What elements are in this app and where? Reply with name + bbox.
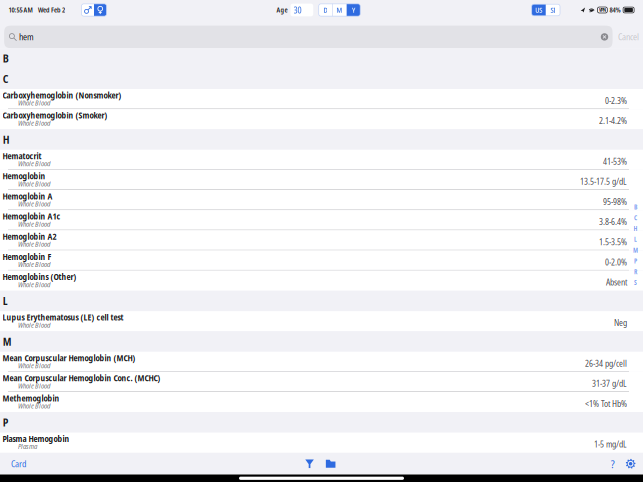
staticText: Wed Feb 2 [38,5,65,15]
staticText: Age [276,5,287,15]
button[interactable]: Hemoglobins (Other) [0,271,643,291]
button[interactable]: Methemoglobin [0,392,643,412]
button[interactable]: Mean Corpuscular Hemoglobin Conc. (MCHC) [0,372,643,392]
staticText: 3.8-6.4% [599,216,627,227]
button[interactable]: Hemoglobin A2 [0,230,643,250]
staticText: Whole Blood [18,158,50,168]
staticText: Hemoglobin A2 [3,231,57,242]
staticText: Absent [606,277,627,288]
staticText: SI [550,5,555,15]
button[interactable]: Hematocrit [0,150,643,170]
staticText: M [336,5,342,15]
staticText: 2.1-4.2% [599,115,627,126]
staticText: Whole Blood [18,98,50,108]
button[interactable]: Section index [629,48,642,453]
staticText: 1.5-3.5% [599,236,627,248]
button[interactable]: hem [4,26,613,48]
staticText: H [3,132,10,147]
staticText: <1% Tot Hb% [585,398,627,409]
staticText: 31-37 g/dL [592,378,627,389]
staticText: 41-53% [603,156,627,167]
button[interactable]: Card [0,453,37,474]
staticText: Methemoglobin [3,392,60,404]
staticText: Carboxyhemoglobin (Smoker) [3,110,108,121]
staticText: 84% [609,5,620,15]
button[interactable]: Units [532,4,560,16]
staticText: R [634,268,637,276]
staticText: Cancel [618,31,639,43]
staticText: S [634,278,637,287]
staticText: C [3,71,9,86]
staticText: P [634,257,637,265]
staticText: 30 [293,4,301,16]
button[interactable]: Help [604,453,622,474]
button[interactable]: Plasma Hemogobin [0,432,643,453]
staticText: Whole Blood [18,219,50,229]
staticText: Whole Blood [18,199,50,209]
staticText: Y [352,5,355,15]
staticText: M [633,246,638,254]
button[interactable]: Hemoglobin [0,170,643,190]
staticText: ? [611,456,615,471]
staticText: Neg [614,317,627,328]
staticText: H [633,224,637,233]
staticText: B [3,51,9,66]
staticText: Hemoglobin A [3,190,53,202]
button[interactable]: Age units [319,4,360,16]
button[interactable]: Carboxyhemoglobin (Smoker) [0,109,643,129]
staticText: 95-98% [603,196,627,207]
staticText: Hemoglobin A1c [3,211,61,222]
button[interactable]: Cancel [613,26,643,48]
staticText: P [3,415,9,430]
button[interactable]: Carboxyhemoglobin (Nonsmoker) [0,89,643,109]
staticText: 0-2.3% [605,95,627,106]
staticText: Carboxyhemoglobin (Nonsmoker) [3,89,122,101]
staticText: Plasma Hemogobin [3,433,70,444]
staticText: Hematocrit [3,150,42,162]
button[interactable]: Hemoglobin A [0,190,643,210]
staticText: Hemoglobin [3,170,46,182]
staticText: Mean Corpuscular Hemoglobin (MCH) [3,352,136,364]
staticText: Plasma [18,441,37,451]
button[interactable]: Sex [81,4,106,16]
staticText: 0-2.0% [605,256,627,268]
button[interactable]: Hemoglobin F [0,250,643,270]
staticText: Mean Corpuscular Hemoglobin Conc. (MCHC) [3,372,161,384]
button[interactable]: Lupus Erythematosus (LE) cell test [0,311,643,331]
staticText: Whole Blood [18,320,50,330]
staticText: VPN [599,7,606,13]
staticText: C [634,214,637,222]
staticText: 1-5 mg/dL [594,438,627,450]
staticText: Whole Blood [18,239,50,249]
button[interactable]: Folders [320,453,341,474]
staticText: Whole Blood [18,259,50,269]
staticText: Whole Blood [18,360,50,370]
staticText: Whole Blood [18,118,50,128]
staticText: US [535,5,542,15]
staticText: D [323,5,327,15]
staticText: B [634,203,637,211]
staticText: 10:55 AM [9,5,33,15]
button[interactable]: Settings [622,453,643,474]
button[interactable]: Mean Corpuscular Hemoglobin (MCH) [0,352,643,372]
staticText: Whole Blood [18,279,50,289]
button[interactable]: 30 [287,4,313,16]
staticText: Whole Blood [18,179,50,189]
staticText: L [3,294,8,308]
button[interactable]: Hemoglobin A1c [0,210,643,230]
staticText: Hemoglobin F [3,251,52,262]
button[interactable]: Filter [299,453,320,474]
staticText: M [3,334,12,349]
staticText: L [634,235,637,244]
staticText: Card [11,458,26,470]
staticText: Whole Blood [18,381,50,391]
staticText: 26-34 pg/cell [585,358,627,369]
staticText: Lupus Erythematosus (LE) cell test [3,312,124,323]
staticText: hem [19,31,34,43]
staticText: Whole Blood [18,401,50,411]
staticText: Hemoglobins (Other) [3,271,77,282]
staticText: 13.5-17.5 g/dL [580,176,627,187]
